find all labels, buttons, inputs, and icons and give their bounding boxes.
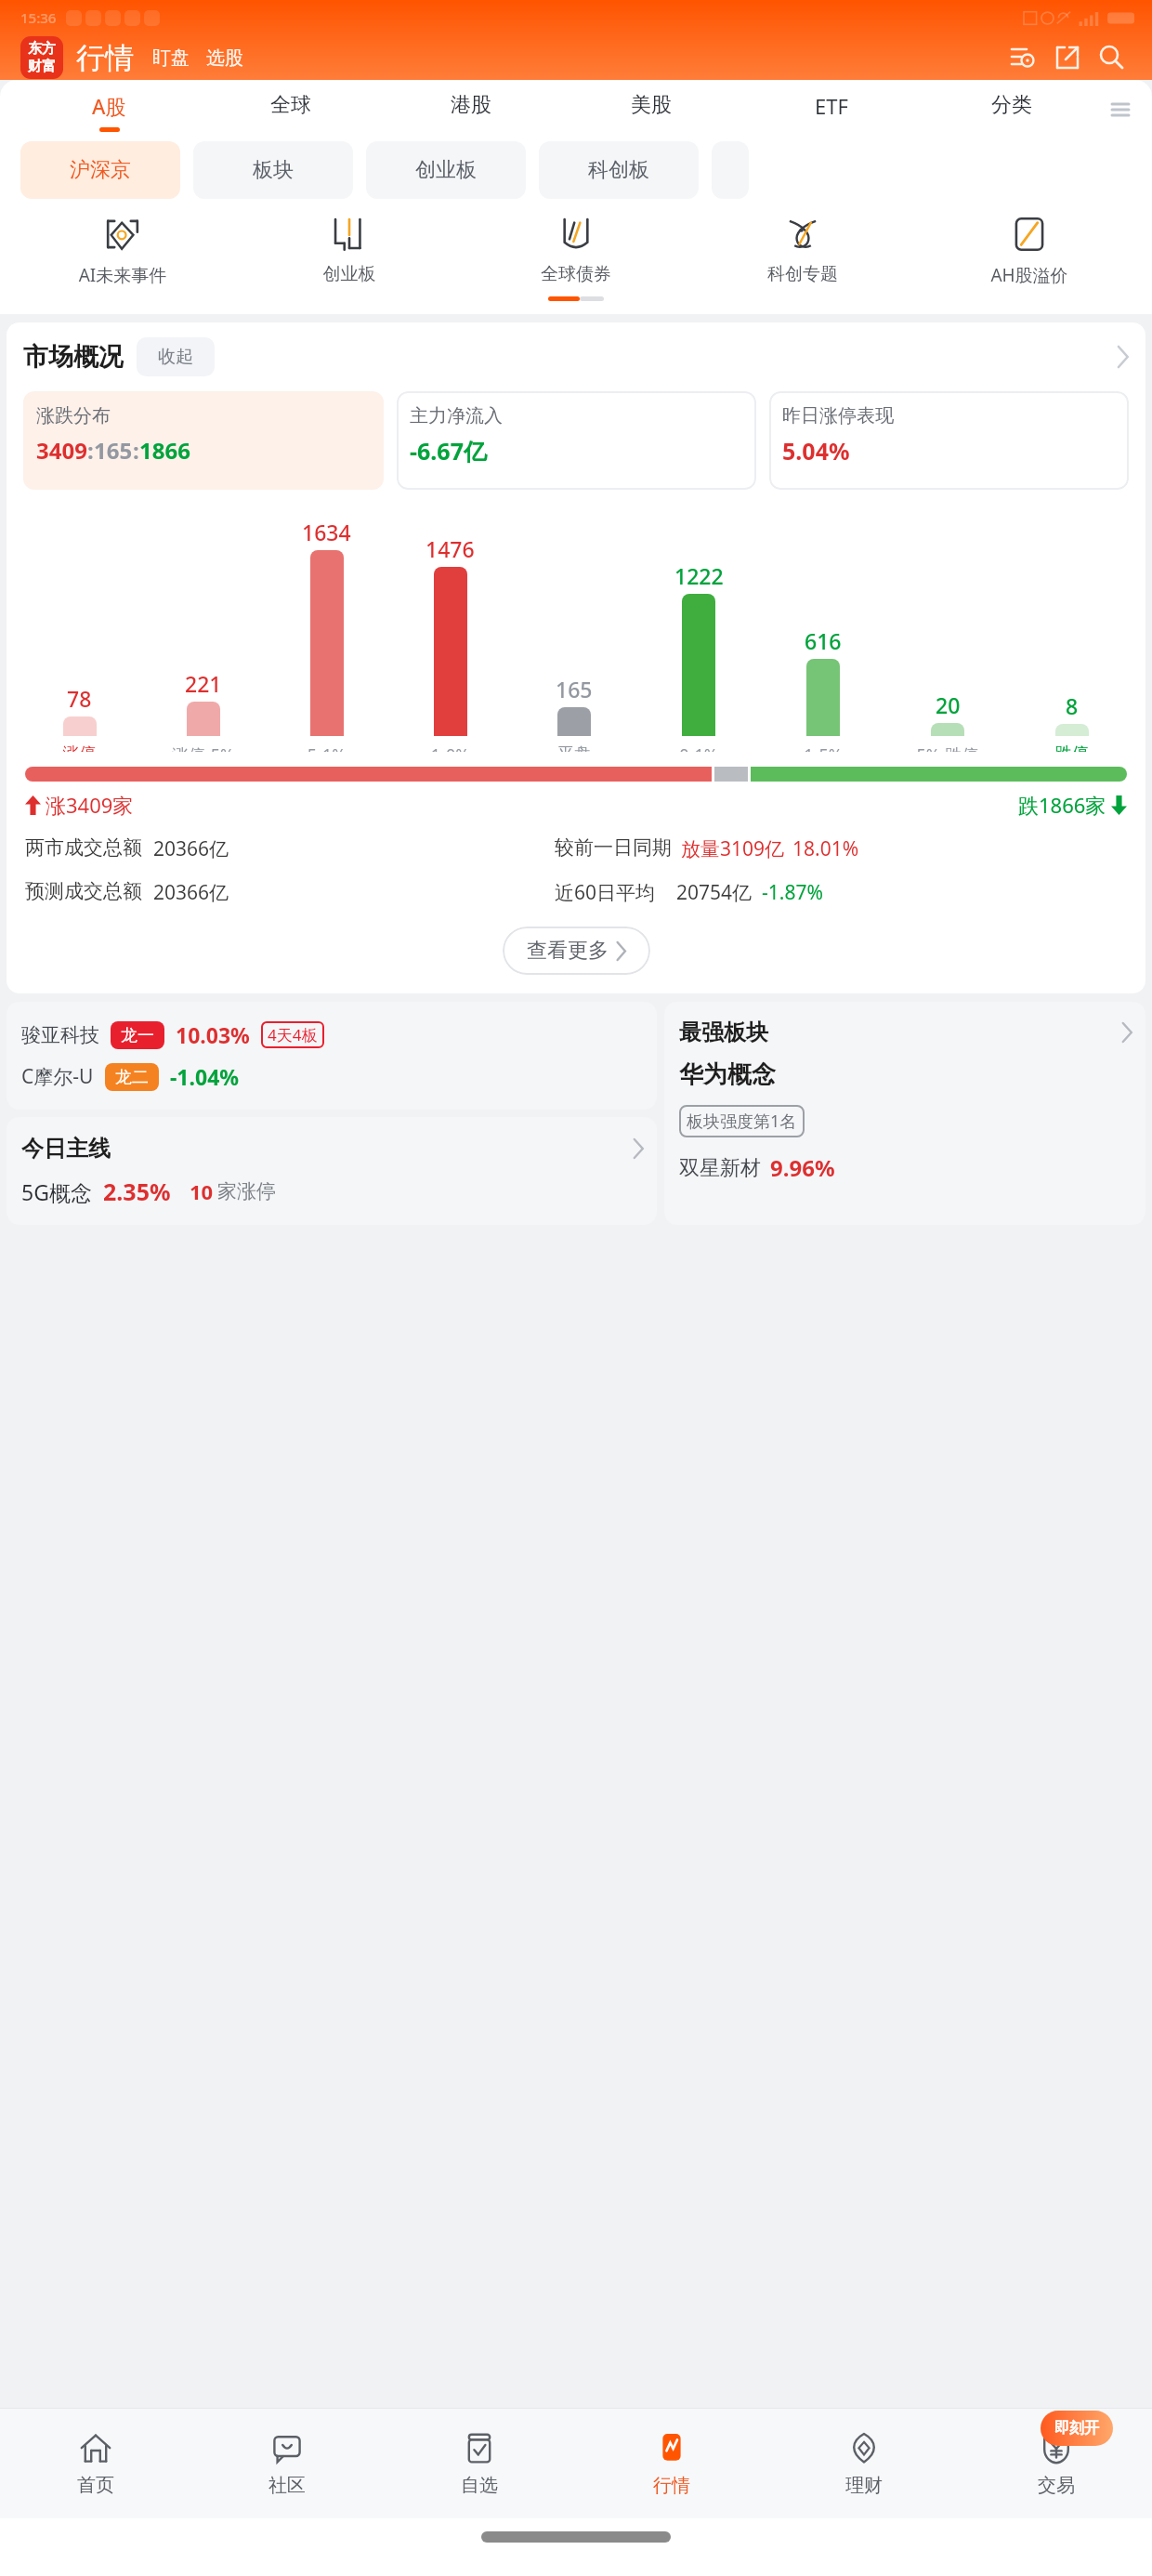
staticText: 平盘 xyxy=(512,743,636,752)
button[interactable]: 自选 xyxy=(383,2409,575,2518)
staticText: 1-0% xyxy=(388,743,512,752)
staticText: 616 xyxy=(805,626,842,655)
staticText: 跌1866家 xyxy=(1018,791,1106,819)
button[interactable]: 查看更多 xyxy=(503,927,650,975)
button[interactable]: 板块 xyxy=(193,141,353,199)
staticText: 行情 xyxy=(653,2474,690,2497)
button[interactable]: 市场概况 xyxy=(23,322,1129,391)
staticText: 骏亚科技 xyxy=(21,1023,99,1047)
button[interactable]: AI未来事件 xyxy=(9,214,236,287)
staticText: 1-5% xyxy=(761,743,885,752)
staticText: 5-1% xyxy=(265,743,388,752)
staticText: 创业板 xyxy=(415,157,477,183)
button[interactable]: A股 xyxy=(19,80,200,139)
button[interactable]: 收起 xyxy=(137,337,215,376)
staticText: 4天4板 xyxy=(268,1024,318,1045)
staticText: 板块 xyxy=(253,157,294,183)
staticText: 1476 xyxy=(425,534,475,563)
button[interactable]: 科创板 xyxy=(539,141,699,199)
staticText: 华为概念 xyxy=(679,1059,776,1090)
button[interactable]: 理财 xyxy=(767,2409,960,2518)
staticText: 1222 xyxy=(674,561,724,590)
staticText: 3409 xyxy=(36,435,87,466)
staticText: -1.87% xyxy=(762,879,823,906)
button[interactable]: ETF xyxy=(741,80,922,139)
button[interactable]: 最强板块 xyxy=(664,1002,1145,1225)
staticText: 最强板块 xyxy=(679,1019,768,1046)
staticText: -1.04% xyxy=(170,1062,240,1091)
button[interactable]: 选股 xyxy=(206,46,243,70)
staticText: 涨3409家 xyxy=(46,791,134,819)
button[interactable]: 涨跌分布 xyxy=(23,391,384,490)
staticText: AI未来事件 xyxy=(9,263,236,287)
button[interactable]: 昨日涨停表现 xyxy=(769,391,1129,490)
staticText: : xyxy=(87,435,94,466)
button[interactable]: 交易 xyxy=(960,2409,1152,2518)
button[interactable]: 今日主线 xyxy=(7,1117,657,1225)
button[interactable]: 行情 xyxy=(76,40,134,76)
button[interactable]: 全球 xyxy=(200,80,381,139)
staticText: 创业板 xyxy=(236,263,463,285)
staticText: 行情 xyxy=(76,40,134,76)
button[interactable]: 盯盘 xyxy=(152,46,190,70)
staticText: 自选 xyxy=(461,2474,498,2497)
staticText: 板块强度第1名 xyxy=(687,1110,797,1133)
button[interactable]: 全球债券 xyxy=(463,214,689,285)
button[interactable]: 科创专题 xyxy=(689,214,916,285)
staticText: 165 xyxy=(556,675,593,703)
staticText: 选股 xyxy=(206,46,243,70)
staticText: 全球 xyxy=(270,92,311,118)
button[interactable]: 搜索 xyxy=(1093,38,1132,77)
staticText: 10.03% xyxy=(176,1020,250,1049)
button[interactable]: 行情 xyxy=(575,2409,767,2518)
staticText: 财富 xyxy=(28,58,56,75)
staticText: 家涨停 xyxy=(217,1179,276,1203)
staticText: 20366亿 xyxy=(153,879,229,906)
button[interactable]: 沪深京 xyxy=(20,141,180,199)
staticText: 9.96% xyxy=(770,1152,835,1183)
staticText: 昨日涨停表现 xyxy=(782,404,894,427)
staticText: 15:36 xyxy=(20,8,57,27)
staticText: 预测成交总额 xyxy=(25,879,142,903)
staticText: 221 xyxy=(185,669,222,698)
staticText: 较前一日同期 xyxy=(555,835,672,860)
staticText: 盯盘 xyxy=(152,46,190,70)
staticText: 交易 xyxy=(1038,2474,1075,2497)
staticText: 0-1% xyxy=(636,743,761,752)
staticText: 涨停 xyxy=(18,743,141,752)
staticText: 2.35% xyxy=(103,1176,171,1207)
button[interactable]: 东方财富 xyxy=(20,36,63,79)
staticText: 今日主线 xyxy=(21,1135,111,1163)
button[interactable]: 首页 xyxy=(0,2409,191,2518)
staticText: 收起 xyxy=(158,346,193,368)
button[interactable]: 主力净流入 xyxy=(397,391,756,490)
button[interactable]: 港股 xyxy=(381,80,561,139)
staticText: 市场概况 xyxy=(23,341,124,373)
staticText: 分类 xyxy=(991,92,1032,118)
staticText: 即刻开 xyxy=(1054,2419,1099,2438)
button[interactable]: 创业板 xyxy=(236,214,463,285)
button[interactable]: AH股溢价 xyxy=(916,214,1143,287)
button[interactable]: 更多分类 xyxy=(1102,80,1139,139)
staticText: 78 xyxy=(67,684,92,713)
button[interactable]: 分享 xyxy=(1048,38,1087,77)
staticText: 8 xyxy=(1066,691,1079,720)
staticText: 龙二 xyxy=(115,1067,149,1088)
button[interactable]: 分类 xyxy=(922,80,1102,139)
button[interactable]: 骏亚科技 xyxy=(7,1002,657,1110)
staticText: 科创专题 xyxy=(689,263,916,285)
staticText: AH股溢价 xyxy=(916,263,1143,287)
staticText: 涨跌分布 xyxy=(36,404,111,427)
staticText: C摩尔-U xyxy=(21,1063,94,1090)
staticText: 5G概念 xyxy=(21,1177,92,1206)
staticText: 5.04% xyxy=(782,435,850,467)
button[interactable]: 创业板 xyxy=(366,141,526,199)
button[interactable]: 自定义列表 xyxy=(1003,38,1042,77)
button[interactable]: 美股 xyxy=(561,80,741,139)
button[interactable]: 社区 xyxy=(191,2409,383,2518)
staticText: 双星新材 xyxy=(679,1155,761,1181)
staticText: 1634 xyxy=(302,518,351,546)
staticText: 20 xyxy=(936,690,961,719)
staticText: 20754亿 xyxy=(676,879,753,906)
